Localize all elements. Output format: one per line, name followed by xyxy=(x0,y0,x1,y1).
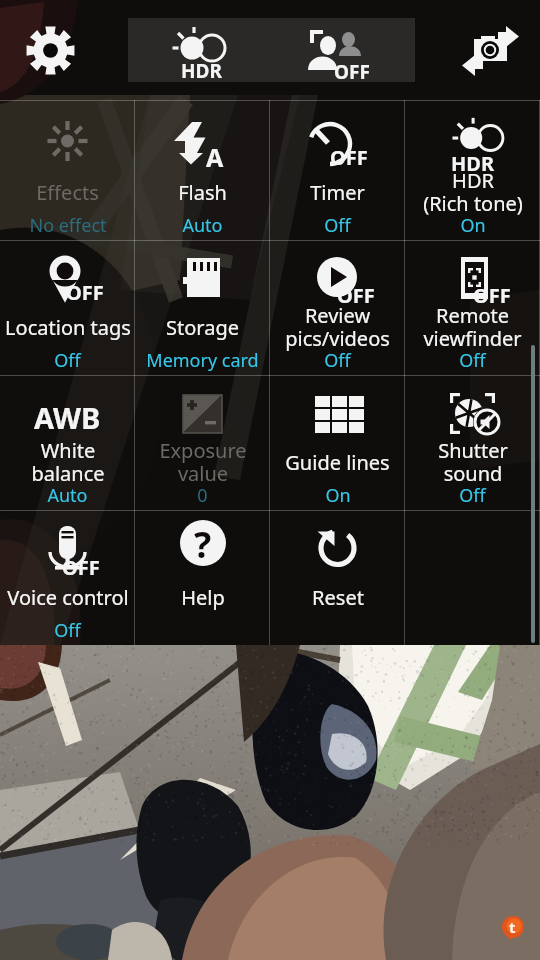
staticText: Off xyxy=(324,348,351,373)
staticText: Off xyxy=(54,348,81,373)
button[interactable]: OFF xyxy=(0,510,135,645)
staticText: Effects xyxy=(36,179,99,206)
staticText: No effect xyxy=(29,213,107,238)
button[interactable]: Guide lines xyxy=(270,375,405,510)
button[interactable]: OFF xyxy=(270,240,405,375)
staticText: Location tags xyxy=(5,314,131,341)
button[interactable]: Storage xyxy=(135,240,270,375)
button[interactable]: Reset xyxy=(270,510,405,645)
staticText: 0 xyxy=(197,483,208,508)
staticText: HDR xyxy=(451,150,495,177)
staticText: Remote viewfinder xyxy=(423,302,522,352)
staticText: Reset xyxy=(312,584,364,611)
staticText: Auto xyxy=(182,213,223,238)
staticText: HDR (Rich tone) xyxy=(423,167,523,217)
button[interactable]: Switch camera xyxy=(450,15,535,90)
button[interactable]: Face detection off xyxy=(271,18,415,82)
button[interactable]: OFF xyxy=(270,100,405,240)
staticText: Off xyxy=(324,213,351,238)
staticText: Exposure value xyxy=(159,437,247,487)
staticText: Review pics/videos xyxy=(285,302,390,352)
staticText: ? xyxy=(194,520,212,566)
staticText: Shutter sound xyxy=(438,437,508,487)
staticText: On xyxy=(460,213,486,238)
staticText: t xyxy=(509,917,516,937)
staticText: OFF xyxy=(337,282,375,309)
button[interactable]: Effects xyxy=(0,100,135,240)
button[interactable]: Shutter sound xyxy=(405,375,540,510)
staticText: On xyxy=(325,483,351,508)
staticText: Off xyxy=(459,348,486,373)
staticText: OFF xyxy=(330,144,368,171)
staticText: Help xyxy=(181,584,225,611)
button[interactable]: A xyxy=(135,100,270,240)
staticText: Storage xyxy=(166,314,239,341)
staticText: Memory card xyxy=(146,348,259,373)
staticText: OFF xyxy=(62,554,100,581)
button[interactable]: ? xyxy=(135,510,270,645)
button[interactable]: Settings xyxy=(26,26,75,75)
button[interactable]: HDR xyxy=(128,18,271,82)
staticText: Off xyxy=(459,483,486,508)
staticText: A xyxy=(206,140,224,174)
staticText: White balance xyxy=(31,437,105,487)
staticText: AWB xyxy=(34,398,101,437)
button[interactable]: Exposure value xyxy=(135,375,270,510)
staticText: OFF xyxy=(334,59,370,85)
staticText: Timer xyxy=(310,179,365,206)
staticText: Guide lines xyxy=(285,449,390,476)
staticText: Auto xyxy=(47,483,88,508)
button[interactable]: AWB xyxy=(0,375,135,510)
button[interactable]: Tumblr watermark xyxy=(502,916,524,938)
staticText: Flash xyxy=(178,179,227,206)
staticText: Voice control xyxy=(7,584,129,611)
staticText: OFF xyxy=(66,279,104,306)
button[interactable]: OFF xyxy=(0,240,135,375)
staticText: OFF xyxy=(473,282,511,309)
staticText: Off xyxy=(54,618,81,643)
button[interactable]: HDR xyxy=(405,100,540,240)
button[interactable]: OFF xyxy=(405,240,540,375)
staticText: HDR xyxy=(181,58,222,84)
